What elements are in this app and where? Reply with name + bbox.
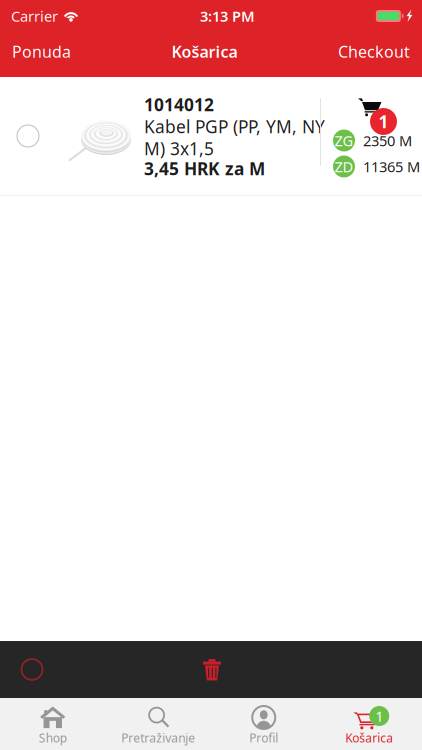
button[interactable]: Select item bbox=[0, 106, 56, 166]
staticText: 3:13 PM bbox=[200, 6, 255, 26]
button[interactable]: Select all bbox=[4, 641, 60, 698]
button[interactable]: 1 bbox=[316, 698, 422, 750]
staticText: 3,45 HRK za M bbox=[144, 157, 265, 180]
staticText: ZD bbox=[334, 157, 353, 176]
staticText: 2350 M bbox=[363, 131, 412, 150]
staticText: Profil bbox=[249, 730, 278, 746]
button[interactable]: Checkout bbox=[330, 28, 422, 74]
staticText: Košarica bbox=[345, 730, 393, 746]
button[interactable]: Shop bbox=[0, 698, 105, 750]
staticText: Košarica bbox=[171, 41, 237, 62]
staticText: Checkout bbox=[338, 41, 410, 62]
staticText: M) 3x1,5 bbox=[144, 137, 214, 160]
button[interactable]: Profil bbox=[211, 698, 316, 750]
staticText: Kabel PGP (PP, YM, NY bbox=[144, 115, 325, 138]
staticText: Shop bbox=[39, 730, 67, 746]
button[interactable]: Delete selected bbox=[184, 641, 238, 698]
staticText: Pretraživanje bbox=[121, 730, 195, 746]
staticText: 11365 M bbox=[363, 157, 420, 176]
button[interactable]: Ponuda bbox=[0, 28, 79, 74]
staticText: Carrier bbox=[11, 6, 58, 26]
staticText: 1014012 bbox=[144, 93, 214, 116]
staticText: Ponuda bbox=[12, 41, 71, 62]
staticText: 1 bbox=[378, 110, 388, 133]
button[interactable]: Pretraživanje bbox=[105, 698, 211, 750]
staticText: 1 bbox=[375, 706, 383, 726]
staticText: ZG bbox=[334, 131, 353, 150]
